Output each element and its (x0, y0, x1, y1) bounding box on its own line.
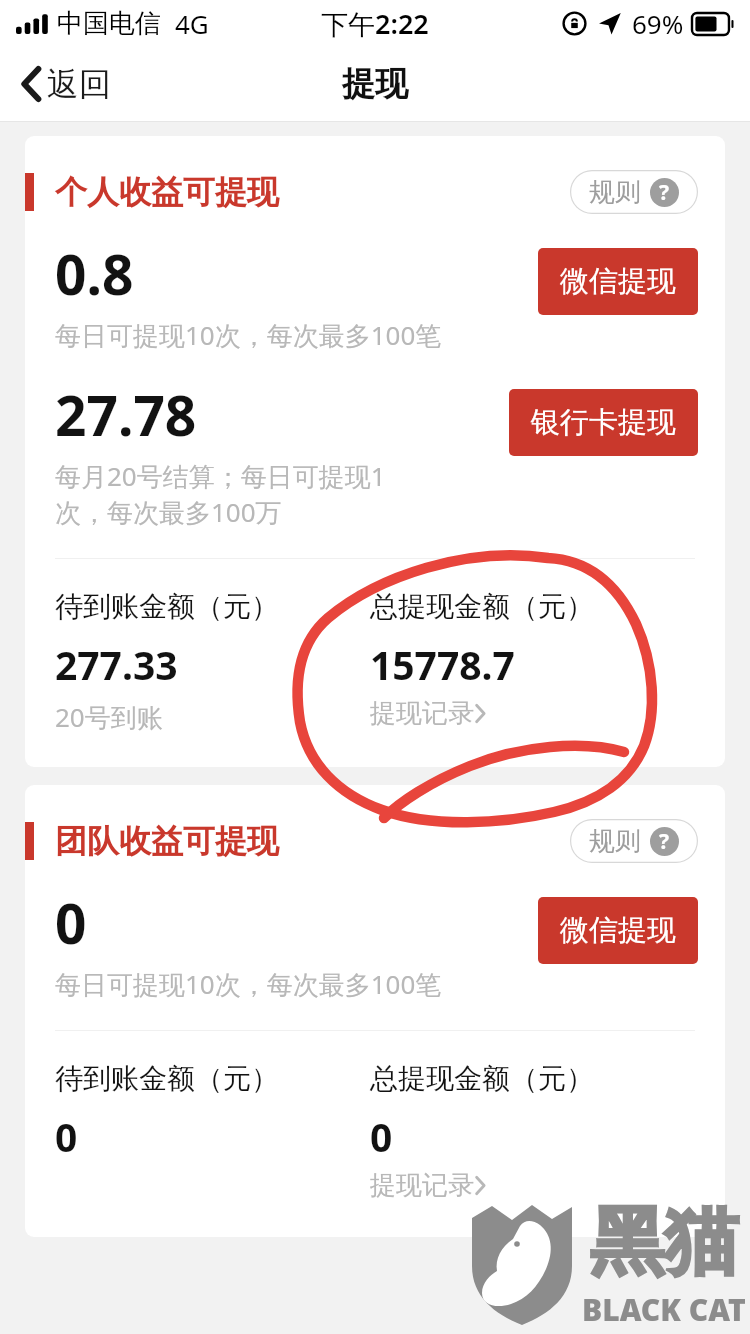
staticText: 待到账金额（元） (55, 589, 279, 624)
staticText: 0 (55, 1110, 78, 1163)
button[interactable]: 规则 说明 (570, 819, 698, 863)
staticText: 0 (370, 1110, 393, 1163)
button[interactable]: 提现记录 (370, 1169, 487, 1202)
staticText: 20号到账 (55, 699, 163, 735)
button[interactable]: 提现记录 (370, 697, 487, 730)
staticText: 总提现金额（元） (370, 1061, 594, 1096)
button[interactable]: 微信提现 (538, 897, 698, 964)
button[interactable]: 微信提现 (538, 248, 698, 315)
staticText: 27.78 (55, 377, 197, 452)
staticText: BLACK CAT (582, 1289, 746, 1330)
button[interactable]: 规则 说明 (570, 170, 698, 214)
button[interactable]: 返回 (0, 54, 131, 114)
staticText: 0 (55, 885, 87, 960)
button[interactable]: 银行卡提现 (509, 389, 698, 456)
staticText: 每月20号结算；每日可提现1 (55, 458, 386, 494)
staticText: 中国电信 (57, 7, 161, 40)
staticText: 银行卡提现 (531, 404, 676, 441)
staticText: 提现 (342, 63, 408, 105)
staticText: 黑猫 (590, 1196, 738, 1289)
staticText: 0.8 (55, 236, 134, 311)
staticText: ? (659, 827, 670, 856)
staticText: 277.33 (55, 638, 178, 691)
staticText: 每日可提现10次，每次最多100笔 (55, 966, 442, 1002)
staticText: 返回 (47, 64, 111, 104)
staticText: 个人收益可提现 (55, 172, 279, 212)
staticText: 69% (632, 6, 684, 41)
staticText: 团队收益可提现 (55, 821, 279, 861)
staticText: 微信提现 (560, 912, 676, 949)
staticText: 提现记录 (370, 1169, 474, 1202)
staticText: 规则 (589, 825, 641, 858)
staticText: 次，每次最多100万 (55, 494, 282, 530)
staticText: 每日可提现10次，每次最多100笔 (55, 317, 442, 353)
staticText: 4G (175, 6, 209, 41)
staticText: 总提现金额（元） (370, 589, 594, 624)
staticText: 15778.7 (370, 638, 515, 691)
staticText: 规则 (589, 176, 641, 209)
staticText: 微信提现 (560, 263, 676, 300)
staticText: 待到账金额（元） (55, 1061, 279, 1096)
staticText: 提现记录 (370, 697, 474, 730)
staticText: ? (659, 178, 670, 207)
staticText: 下午2:22 (321, 5, 429, 42)
